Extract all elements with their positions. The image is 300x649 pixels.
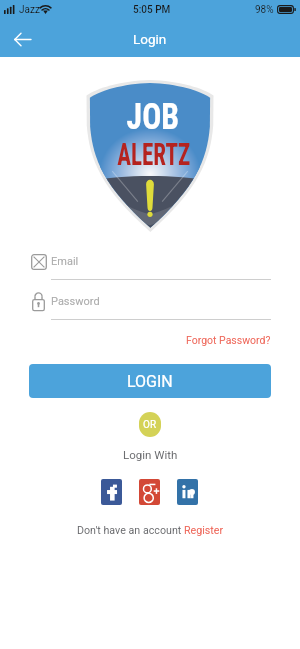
button[interactable]: Back	[8, 25, 36, 53]
staticText: Don't have an account	[77, 524, 184, 537]
button[interactable]: LinkedIn	[177, 479, 198, 505]
staticText: 5:05 PM	[133, 4, 171, 16]
button[interactable]: Google Plus	[139, 479, 160, 505]
staticText: Jazz	[19, 4, 40, 16]
staticText: ALERTZ	[117, 135, 191, 173]
staticText: 98%	[255, 4, 274, 16]
staticText: Email	[51, 255, 79, 268]
staticText: Login With	[123, 448, 178, 461]
button[interactable]: Register	[184, 524, 224, 537]
staticText: LOGIN	[127, 372, 173, 391]
staticText: Password	[51, 295, 100, 308]
staticText: Login	[133, 31, 167, 47]
button[interactable]: LOGIN	[29, 364, 271, 398]
staticText: OR	[143, 419, 157, 431]
button[interactable]: Facebook	[101, 479, 122, 505]
button[interactable]: Forgot Password?	[186, 334, 271, 346]
staticText: Forgot Password?	[186, 334, 271, 346]
staticText: JOB	[127, 96, 179, 138]
